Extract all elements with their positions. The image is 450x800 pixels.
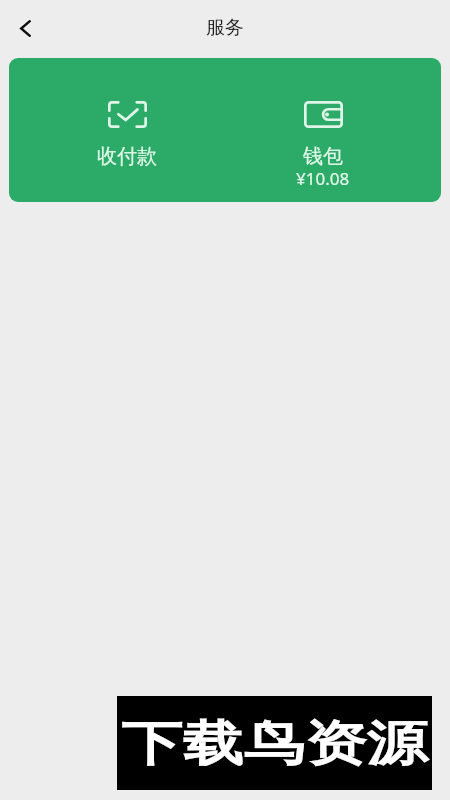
staticText: 钱包 xyxy=(303,144,343,169)
button[interactable]: 收付款 xyxy=(29,58,225,202)
staticText: ¥10.08 xyxy=(296,167,350,190)
button[interactable]: 钱包 xyxy=(225,58,421,202)
button[interactable]: Back xyxy=(3,6,47,50)
staticText: 下载鸟资源 xyxy=(121,714,428,775)
staticText: 服务 xyxy=(206,16,244,40)
staticText: 收付款 xyxy=(97,144,157,169)
